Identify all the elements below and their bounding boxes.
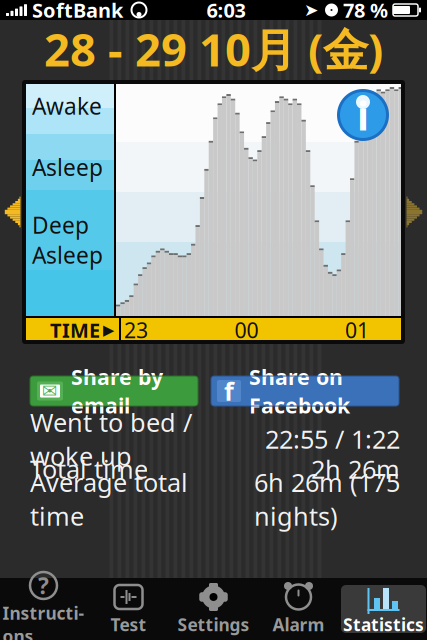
button[interactable]: Next night [403, 195, 427, 229]
staticText: ▶ [103, 322, 114, 338]
staticText: Share by email [71, 363, 163, 419]
staticText: Statistics [343, 613, 424, 636]
staticText: 01 [345, 316, 369, 344]
button[interactable]: Test [86, 585, 171, 633]
staticText: 00 [234, 316, 258, 344]
staticText: 78 % [343, 0, 388, 23]
staticText: Asleep [32, 152, 103, 182]
button[interactable]: ? [1, 585, 86, 633]
staticText: SoftBank [32, 0, 123, 23]
staticText: 23 [124, 316, 148, 344]
staticText: Alarm [272, 613, 324, 636]
staticText: 22:55 / 1:22 [265, 422, 400, 456]
staticText: Asleep [32, 240, 103, 270]
staticText: 2h 26m [311, 452, 400, 486]
staticText: 28 - 29 10月 (金) [44, 19, 383, 79]
staticText: 6:03 [206, 0, 245, 23]
button[interactable]: Alarm [256, 585, 341, 633]
staticText: Awake [32, 91, 102, 121]
button[interactable]: Info [335, 87, 391, 143]
staticText: Deep [32, 210, 89, 240]
staticText: f [224, 374, 234, 408]
button[interactable]: Statistics [341, 585, 426, 633]
staticText: i [357, 88, 369, 141]
staticText: Settings [177, 613, 249, 636]
staticText: Average total time [30, 465, 188, 533]
staticText: Went to bed / woke up [30, 405, 192, 473]
staticText: Test [110, 613, 146, 636]
staticText: ? [38, 570, 49, 600]
staticText: ✉ [42, 380, 58, 402]
staticText: Instructions [2, 601, 84, 640]
staticText: 6h 26m (175 nights) [254, 465, 400, 533]
staticText: ➤ [304, 0, 319, 20]
button[interactable]: Previous night [0, 195, 24, 229]
staticText: TIME [50, 317, 100, 343]
button[interactable]: Settings [171, 585, 256, 633]
button[interactable]: f [211, 376, 399, 406]
staticText: Share on Facebook [249, 363, 350, 419]
staticText: Total time [30, 452, 148, 486]
button[interactable]: ✉ [30, 376, 198, 406]
